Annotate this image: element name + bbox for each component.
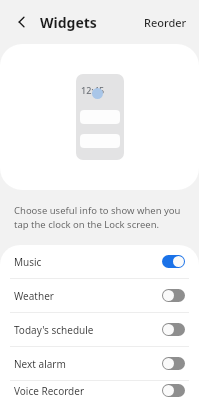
staticText: Choose useful info to show when you tap … [14, 204, 181, 231]
button[interactable]: Reorder [134, 9, 197, 36]
staticText: Voice Recorder [14, 384, 85, 398]
button[interactable]: Back [8, 8, 36, 36]
button[interactable]: Off [162, 289, 185, 302]
staticText: Weather [14, 289, 54, 303]
button[interactable]: Off [162, 357, 185, 370]
button[interactable]: Weather [0, 279, 199, 312]
staticText: Next alarm [14, 357, 66, 371]
button[interactable]: On [162, 255, 185, 268]
staticText: Reorder [144, 15, 187, 30]
button[interactable]: Today's schedule [0, 313, 199, 346]
staticText: Music [14, 255, 42, 269]
button[interactable]: Off [162, 323, 185, 336]
button[interactable]: Next alarm [0, 347, 199, 380]
staticText: 12:45 [81, 84, 105, 96]
button[interactable]: Voice Recorder [0, 381, 199, 400]
staticText: Today's schedule [14, 323, 94, 337]
staticText: Widgets [40, 13, 97, 32]
button[interactable]: Music [0, 245, 199, 278]
button[interactable]: Off [162, 384, 185, 397]
